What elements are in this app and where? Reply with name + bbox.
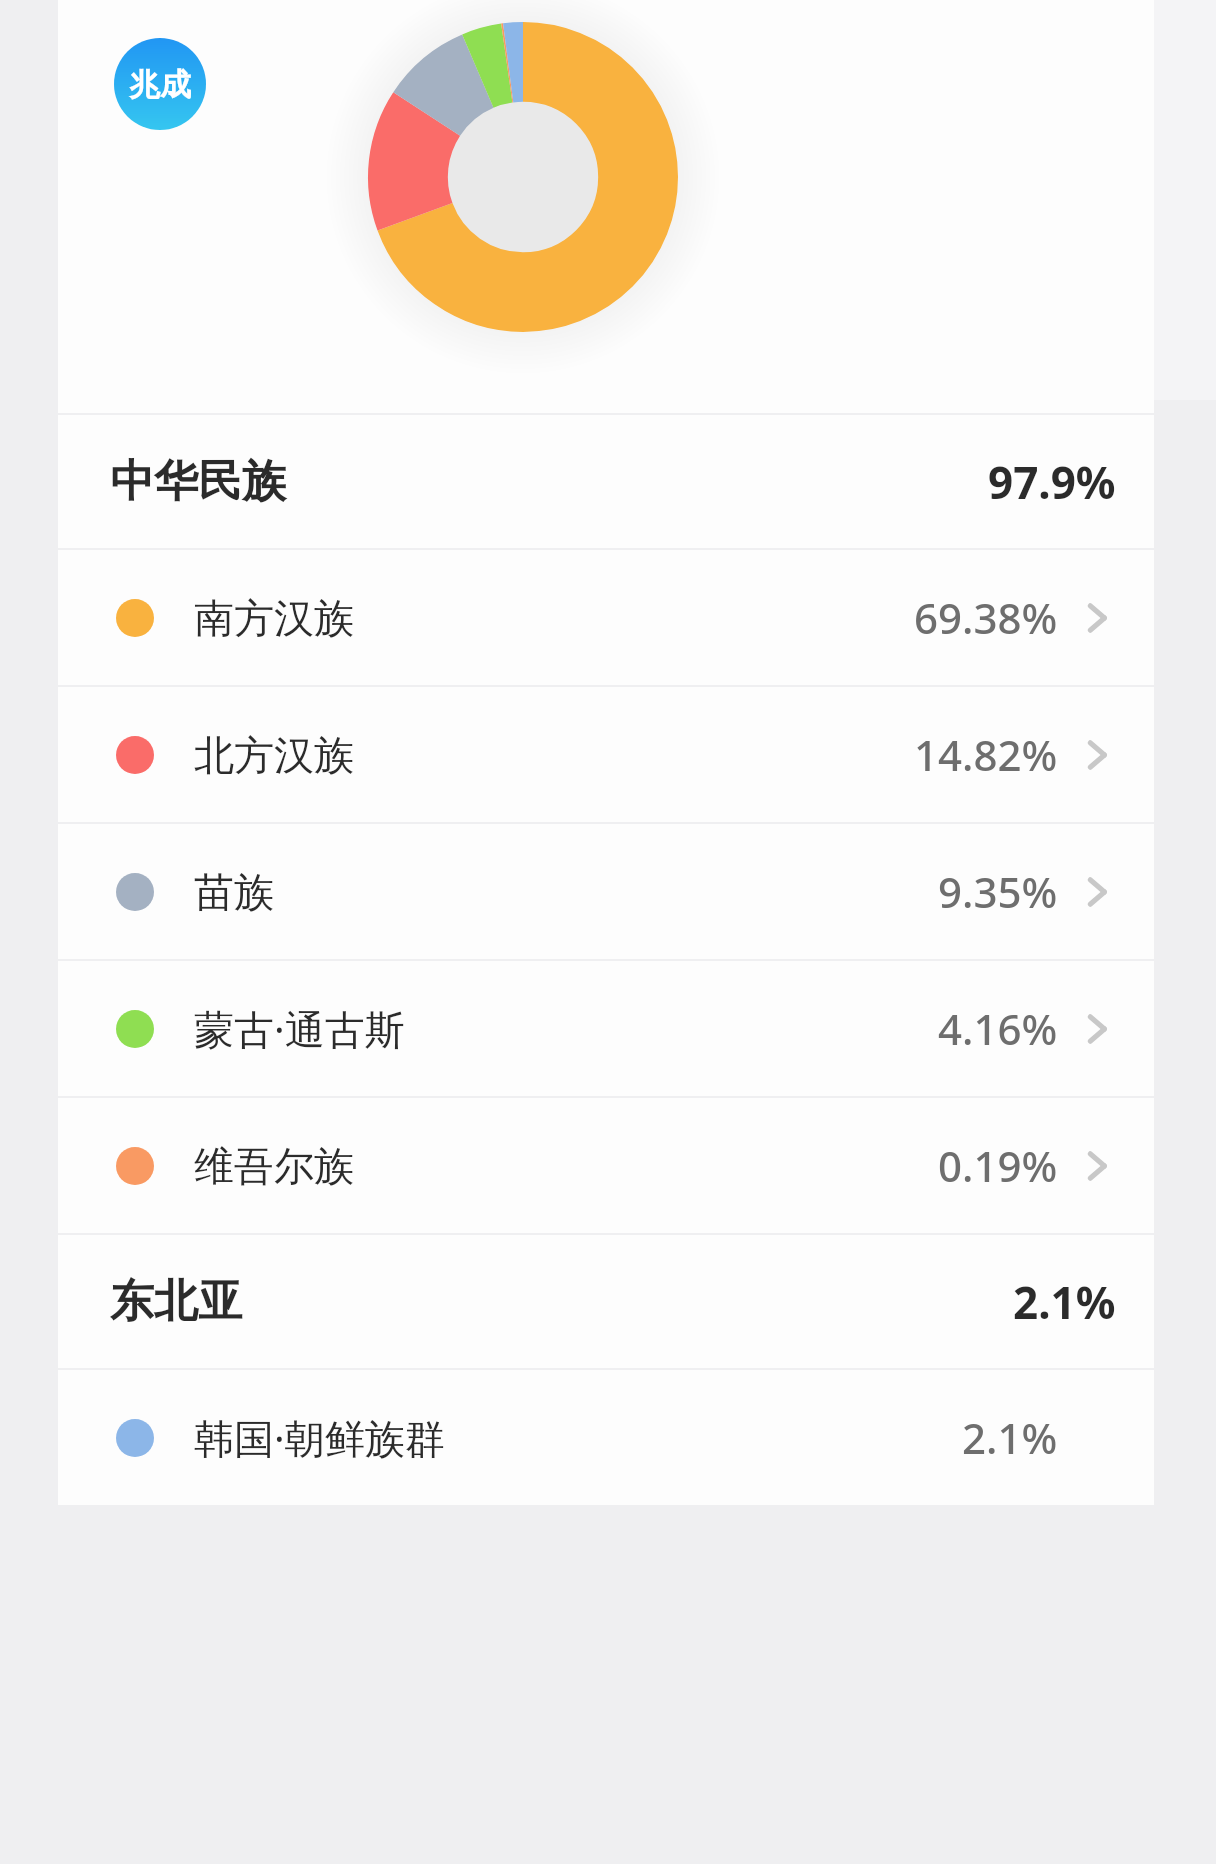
button[interactable]: 中华民族 xyxy=(58,415,1154,548)
staticText: 0.19% xyxy=(938,1137,1058,1194)
staticText: 东北亚 xyxy=(110,1274,242,1329)
button[interactable]: 东北亚 xyxy=(58,1235,1154,1368)
other: 查看详情 xyxy=(1080,738,1114,772)
staticText: 中华民族 xyxy=(110,454,286,509)
staticText: 69.38% xyxy=(914,589,1058,646)
button[interactable]: 北方汉族 xyxy=(58,687,1154,822)
staticText: 97.9% xyxy=(988,452,1116,512)
button[interactable]: 苗族 xyxy=(58,824,1154,959)
staticText: 韩国·朝鲜族群 xyxy=(194,1410,445,1465)
button[interactable]: 兆成 xyxy=(114,38,206,130)
staticText: 4.16% xyxy=(938,1000,1058,1057)
staticText: 2.1% xyxy=(962,1409,1058,1466)
other: 查看详情 xyxy=(1080,1012,1114,1046)
other: 查看详情 xyxy=(1080,1149,1114,1183)
staticText: 苗族 xyxy=(194,867,274,917)
other: 查看详情 xyxy=(1080,601,1114,635)
other: 查看详情 xyxy=(1080,875,1114,909)
button[interactable]: 蒙古·通古斯 xyxy=(58,961,1154,1096)
staticText: 南方汉族 xyxy=(194,593,354,643)
button[interactable]: 南方汉族 xyxy=(58,550,1154,685)
staticText: 北方汉族 xyxy=(194,730,354,780)
button[interactable]: 维吾尔族 xyxy=(58,1098,1154,1233)
staticText: 兆成 xyxy=(129,65,191,104)
staticText: 2.1% xyxy=(1013,1272,1116,1332)
staticText: 维吾尔族 xyxy=(194,1141,354,1191)
staticText: 14.82% xyxy=(914,726,1058,783)
staticText: 蒙古·通古斯 xyxy=(194,1001,405,1056)
staticText: 9.35% xyxy=(938,863,1058,920)
button[interactable]: 韩国·朝鲜族群 xyxy=(58,1370,1154,1505)
